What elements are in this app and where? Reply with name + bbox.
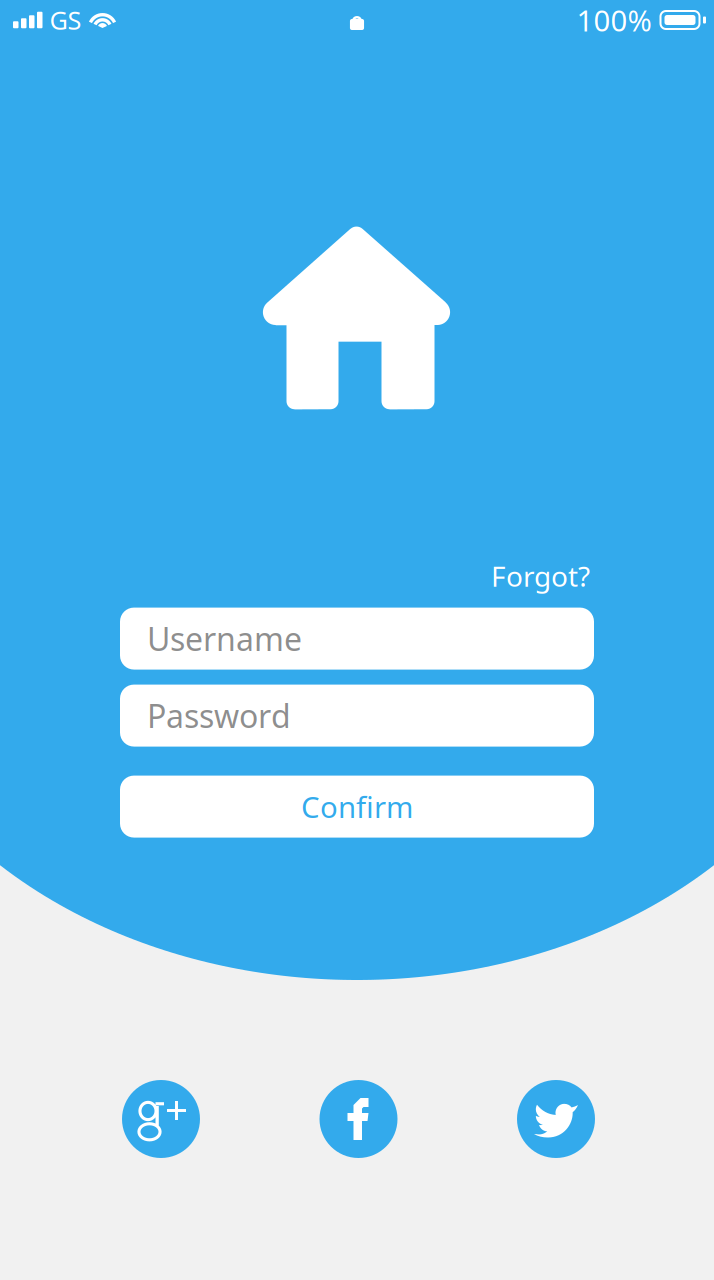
button[interactable]: Password	[120, 685, 594, 747]
button[interactable]: Confirm	[120, 776, 594, 838]
staticText: GS	[49, 3, 81, 37]
button[interactable]: Sign in with Google Plus	[122, 1080, 200, 1158]
staticText: Confirm	[301, 787, 413, 826]
staticText: Password	[147, 694, 291, 737]
button[interactable]: Username	[120, 608, 594, 670]
button[interactable]: Forgot?	[487, 554, 594, 598]
staticText: Username	[147, 617, 302, 660]
staticText: 100%	[576, 0, 651, 39]
button[interactable]: Sign in with Facebook	[319, 1080, 397, 1158]
staticText: Forgot?	[491, 557, 590, 595]
button[interactable]: Sign in with Twitter	[517, 1080, 595, 1158]
